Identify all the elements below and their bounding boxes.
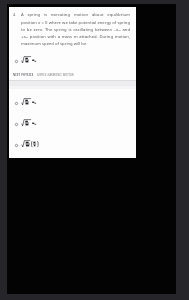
staticText: SIMPLE HARMONIC MOTION <box>37 73 74 77</box>
staticText: 4. <box>13 12 17 17</box>
button[interactable]: 4. <box>9 7 136 158</box>
staticText: A spring is executing motion about equil… <box>21 12 130 46</box>
button[interactable] <box>11 96 136 108</box>
button[interactable] <box>11 138 136 150</box>
button[interactable] <box>11 54 136 66</box>
staticText: NEET PHYSICS <box>13 73 34 77</box>
button[interactable] <box>11 117 136 129</box>
